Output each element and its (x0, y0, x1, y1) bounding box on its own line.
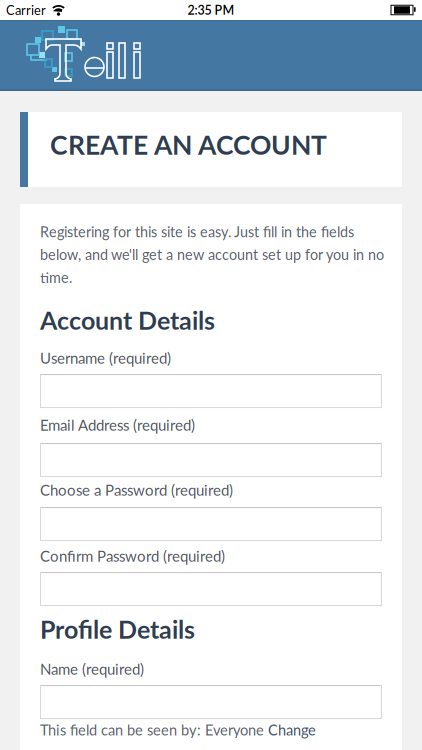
staticText: Profile Details (40, 614, 195, 644)
staticText: Account Details (40, 305, 215, 335)
staticText: Change (268, 721, 316, 738)
staticText: Username (required) (40, 349, 171, 367)
staticText: 2:35 PM (187, 2, 234, 17)
button[interactable]: Username (40, 374, 382, 408)
button[interactable]: Teili home (0, 20, 422, 91)
staticText: Confirm Password (required) (40, 547, 225, 565)
staticText: Carrier (6, 2, 46, 18)
staticText: Registering for this site is easy. Just … (40, 223, 384, 286)
staticText: CREATE AN ACCOUNT (50, 129, 327, 160)
staticText: Choose a Password (required) (40, 481, 233, 499)
staticText: Email Address (required) (40, 416, 195, 434)
staticText: This field can be seen by: Everyone (40, 721, 264, 738)
button[interactable]: Email Address (40, 443, 382, 477)
button[interactable]: Name (40, 685, 382, 719)
button[interactable]: Confirm Password (40, 572, 382, 606)
button[interactable]: Change (268, 721, 316, 738)
staticText: Name (required) (40, 660, 144, 678)
button[interactable]: Choose a Password (40, 507, 382, 541)
